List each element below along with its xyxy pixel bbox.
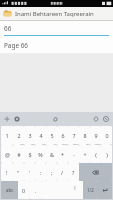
- staticText: abc: [6, 187, 14, 193]
- staticText: ?: [72, 169, 75, 176]
- button[interactable]: !: [1, 163, 13, 181]
- button[interactable]: #: [13, 145, 24, 163]
- staticText: 0: [105, 132, 109, 139]
- button[interactable]: App icon: [0, 7, 113, 20]
- staticText: $: [28, 151, 32, 158]
- staticText: 4: [39, 132, 43, 139]
- staticText: :: [40, 169, 42, 176]
- button[interactable]: %: [35, 145, 46, 163]
- button[interactable]: Backspace: [79, 163, 112, 181]
- button[interactable]: Close keyboard: [102, 115, 110, 123]
- staticText: pqrs: [73, 142, 79, 145]
- button[interactable]: :: [35, 163, 46, 181]
- button[interactable]: 6: [57, 126, 68, 145]
- staticText: &: [50, 151, 54, 158]
- button[interactable]: ": [13, 163, 24, 181]
- staticText: Page 66: [4, 41, 28, 50]
- staticText: !: [6, 169, 8, 176]
- button[interactable]: *: [57, 145, 68, 163]
- staticText: Inami Behtareen Taqreerain: [15, 10, 94, 18]
- button[interactable]: 8: [79, 126, 90, 145]
- button[interactable]: 0: [101, 126, 112, 145]
- button[interactable]: 1/2: [83, 181, 97, 199]
- button[interactable]: Theme: [92, 115, 100, 123]
- staticText: 7: [72, 132, 76, 139]
- staticText: 1: [5, 132, 9, 139]
- staticText: 8: [83, 132, 87, 139]
- staticText: wxyz: [95, 142, 101, 145]
- button[interactable]: &: [46, 145, 57, 163]
- staticText: *: [61, 151, 64, 158]
- button[interactable]: Space: [42, 181, 83, 199]
- button[interactable]: -: [68, 145, 79, 163]
- staticText: #: [17, 151, 21, 158]
- staticText: 0: [22, 187, 26, 194]
- staticText: ghi: [42, 142, 46, 145]
- staticText: 1/2: [87, 187, 94, 193]
- button[interactable]: Handwriting input: [52, 115, 60, 123]
- other: App icon: [3, 9, 12, 18]
- staticText: ;: [51, 169, 53, 176]
- button[interactable]: abc: [1, 181, 18, 199]
- button[interactable]: ': [24, 163, 35, 181]
- staticText: /: [61, 169, 64, 176]
- button[interactable]: ;: [46, 163, 57, 181]
- staticText: mno: [62, 142, 68, 145]
- button[interactable]: Settings: [13, 115, 21, 123]
- button[interactable]: Enter: [97, 181, 112, 199]
- staticText: ): [106, 151, 108, 158]
- staticText: jkl: [54, 142, 57, 145]
- button[interactable]: .: [30, 181, 42, 199]
- button[interactable]: @: [1, 145, 13, 163]
- staticText: abc: [20, 142, 24, 145]
- button[interactable]: 7: [68, 126, 79, 145]
- staticText: +: [83, 151, 87, 158]
- staticText: ": [17, 169, 20, 176]
- button[interactable]: ?: [68, 163, 79, 181]
- button[interactable]: 4: [35, 126, 46, 145]
- staticText: tuv: [86, 142, 90, 145]
- staticText: -: [73, 151, 75, 158]
- button[interactable]: 3: [24, 126, 35, 145]
- staticText: %: [38, 151, 43, 158]
- button[interactable]: 5: [46, 126, 57, 145]
- staticText: ': [29, 169, 31, 176]
- button[interactable]: 2: [13, 126, 24, 145]
- button[interactable]: ): [101, 145, 112, 163]
- staticText: @: [5, 151, 10, 158]
- staticText: .: [35, 187, 37, 194]
- button[interactable]: Move keyboard: [3, 115, 11, 123]
- staticText: def: [31, 142, 35, 145]
- staticText: +: [110, 142, 112, 145]
- staticText: (: [95, 151, 97, 158]
- button[interactable]: +: [79, 145, 90, 163]
- button[interactable]: $: [24, 145, 35, 163]
- button[interactable]: 0: [18, 181, 30, 199]
- staticText: 66: [4, 24, 12, 33]
- staticText: 3: [28, 132, 32, 139]
- staticText: 2: [17, 132, 21, 139]
- button[interactable]: 9: [90, 126, 101, 145]
- staticText: 9: [94, 132, 98, 139]
- staticText: 5: [50, 132, 54, 139]
- button[interactable]: /: [57, 163, 68, 181]
- button[interactable]: 66: [0, 24, 113, 36]
- button[interactable]: 1: [1, 126, 13, 145]
- staticText: 6: [61, 132, 65, 139]
- button[interactable]: (: [90, 145, 101, 163]
